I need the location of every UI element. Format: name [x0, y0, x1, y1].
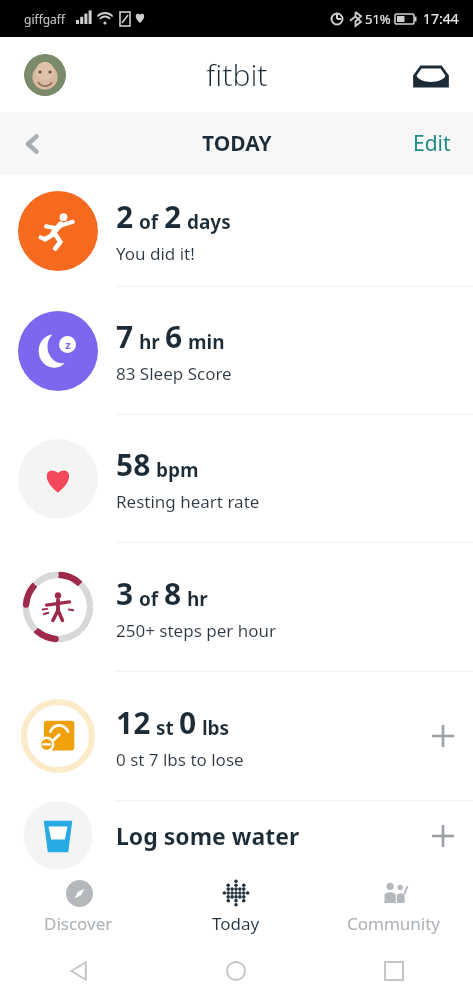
- button[interactable]: Edit: [405, 121, 459, 166]
- staticText: of: [134, 586, 164, 612]
- button[interactable]: 12: [0, 672, 473, 800]
- staticText: Log some water: [116, 820, 413, 851]
- button[interactable]: 3: [0, 543, 473, 671]
- button[interactable]: z: [0, 287, 473, 414]
- staticText: You did it!: [116, 242, 195, 265]
- staticText: bpm: [151, 457, 199, 483]
- staticText: 51%: [365, 10, 391, 28]
- button[interactable]: 2: [0, 175, 473, 286]
- button[interactable]: Discover: [0, 870, 157, 942]
- staticText: 83 Sleep Score: [116, 362, 232, 385]
- staticText: 250+ steps per hour: [116, 619, 277, 642]
- button[interactable]: Recent apps: [315, 942, 473, 999]
- staticText: of: [134, 209, 164, 235]
- button[interactable]: Back: [0, 942, 157, 999]
- button[interactable]: Home: [157, 942, 315, 999]
- staticText: 2: [116, 196, 134, 237]
- button[interactable]: Community: [315, 870, 473, 942]
- staticText: 3: [116, 573, 134, 614]
- staticText: hr: [134, 329, 165, 355]
- staticText: giffgaff: [24, 11, 66, 27]
- button[interactable]: Inbox: [409, 53, 453, 97]
- staticText: hr: [182, 586, 208, 612]
- button[interactable]: Add weight: [413, 672, 473, 800]
- button[interactable]: Log some water: [0, 801, 473, 870]
- staticText: Discover: [44, 912, 113, 935]
- staticText: 6: [165, 316, 183, 357]
- staticText: 17:44: [423, 9, 459, 28]
- staticText: TODAY: [202, 129, 272, 158]
- staticText: st: [151, 715, 179, 741]
- button[interactable]: Today: [157, 870, 315, 942]
- staticText: Resting heart rate: [116, 490, 260, 513]
- staticText: 8: [164, 573, 182, 614]
- staticText: fitbit: [206, 54, 268, 95]
- staticText: min: [183, 329, 225, 355]
- button[interactable]: 58: [0, 415, 473, 542]
- staticText: 0: [179, 702, 197, 743]
- staticText: 2: [164, 196, 182, 237]
- button[interactable]: Add water: [413, 801, 473, 870]
- staticText: Today: [212, 912, 260, 935]
- staticText: 58: [116, 444, 151, 485]
- staticText: 7: [116, 316, 134, 357]
- staticText: 12: [116, 702, 151, 743]
- staticText: lbs: [197, 715, 230, 741]
- staticText: Community: [347, 912, 441, 935]
- staticText: Edit: [413, 129, 451, 158]
- staticText: 0 st 7 lbs to lose: [116, 748, 244, 771]
- staticText: days: [182, 209, 231, 235]
- button[interactable]: Profile: [24, 54, 66, 96]
- button[interactable]: Back: [8, 119, 58, 169]
- staticText: z: [65, 337, 71, 352]
